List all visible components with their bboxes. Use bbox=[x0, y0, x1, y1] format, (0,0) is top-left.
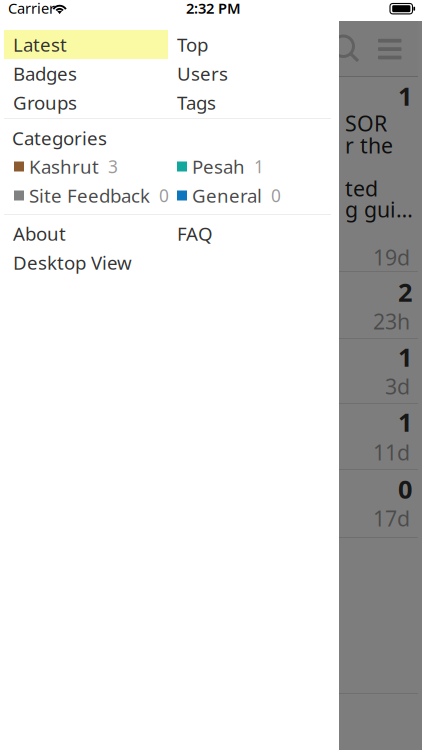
staticText: FAQ bbox=[177, 221, 213, 246]
staticText: Categories bbox=[12, 126, 107, 150]
staticText: Site Feedback bbox=[29, 183, 150, 208]
staticText: 19d bbox=[373, 243, 410, 271]
button[interactable]: About bbox=[4, 219, 168, 248]
staticText: g gui… bbox=[345, 195, 413, 223]
button[interactable]: Groups bbox=[4, 88, 168, 117]
button[interactable]: FAQ bbox=[168, 219, 331, 248]
staticText: 1 bbox=[398, 405, 412, 439]
button[interactable]: General bbox=[177, 181, 320, 210]
staticText: 3 bbox=[108, 155, 118, 178]
button[interactable]: Users bbox=[168, 59, 331, 88]
staticText: 2 bbox=[398, 275, 412, 309]
staticText: 23h bbox=[373, 307, 410, 335]
staticText: Top bbox=[177, 32, 208, 57]
staticText: SOR bbox=[345, 109, 387, 137]
staticText: 0 bbox=[159, 184, 169, 207]
staticText: Latest bbox=[13, 32, 67, 57]
staticText: About bbox=[13, 221, 66, 246]
staticText: ted bbox=[345, 174, 378, 202]
staticText: 1 bbox=[254, 155, 264, 178]
button[interactable]: Pesah bbox=[177, 152, 320, 181]
staticText: 3d bbox=[385, 372, 410, 400]
staticText: Carrier bbox=[8, 0, 55, 18]
button[interactable]: Tags bbox=[168, 88, 331, 117]
staticText: General bbox=[192, 183, 262, 208]
staticText: 1 bbox=[398, 340, 412, 374]
staticText: Users bbox=[177, 61, 228, 86]
staticText: Badges bbox=[13, 61, 77, 86]
button[interactable]: Kashrut bbox=[14, 152, 178, 181]
staticText: 11d bbox=[373, 438, 410, 466]
staticText: 0 bbox=[398, 472, 412, 506]
button[interactable]: Site Feedback bbox=[14, 181, 178, 210]
staticText: Kashrut bbox=[29, 154, 99, 179]
staticText: 17d bbox=[373, 504, 410, 532]
staticText: 0 bbox=[271, 184, 281, 207]
staticText: Groups bbox=[13, 90, 77, 115]
button[interactable]: Desktop View bbox=[4, 248, 168, 277]
staticText: Tags bbox=[177, 90, 216, 115]
button[interactable]: Latest bbox=[4, 30, 168, 59]
staticText: Desktop View bbox=[13, 250, 132, 275]
button[interactable]: Badges bbox=[4, 59, 168, 88]
staticText: r the bbox=[345, 131, 393, 159]
staticText: 1 bbox=[398, 79, 412, 113]
staticText: 2:32 PM bbox=[186, 0, 241, 18]
staticText: Pesah bbox=[192, 154, 245, 179]
button[interactable]: Top bbox=[168, 30, 331, 59]
